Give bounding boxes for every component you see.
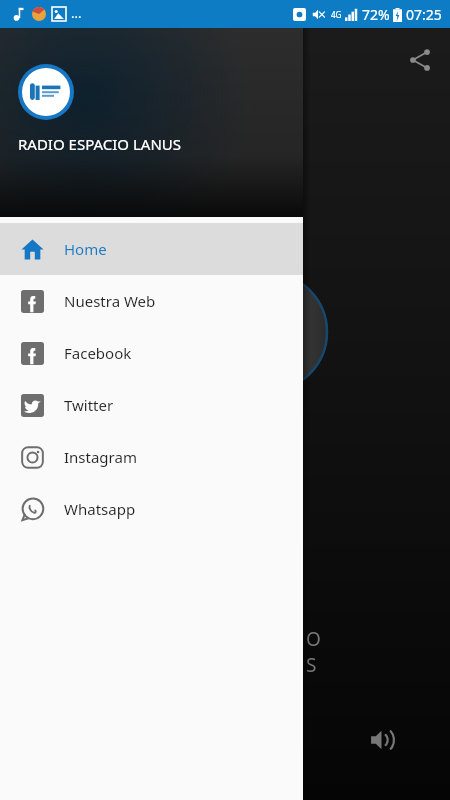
staticText: Whatsapp [64, 499, 136, 519]
staticText: O [306, 626, 321, 652]
button[interactable]: Volume [362, 720, 402, 760]
staticText: 4G [331, 9, 342, 20]
button[interactable]: Whatsapp [0, 483, 303, 535]
button[interactable]: Twitter [0, 379, 303, 431]
button[interactable]: Home [0, 223, 303, 275]
staticText: Home [64, 239, 107, 259]
staticText: Twitter [64, 395, 114, 415]
button[interactable]: Share [400, 40, 440, 80]
staticText: Facebook [64, 343, 132, 363]
button[interactable]: Instagram [0, 431, 303, 483]
button[interactable]: Facebook [0, 327, 303, 379]
staticText: RADIO ESPACIO LANUS [18, 134, 181, 154]
button[interactable]: Nuestra Web [0, 275, 303, 327]
staticText: ... [71, 4, 82, 22]
staticText: S [306, 652, 317, 678]
staticText: Instagram [64, 447, 137, 467]
staticText: Nuestra Web [64, 291, 156, 311]
staticText: 07:25 [406, 5, 442, 24]
staticText: 72% [362, 5, 390, 24]
